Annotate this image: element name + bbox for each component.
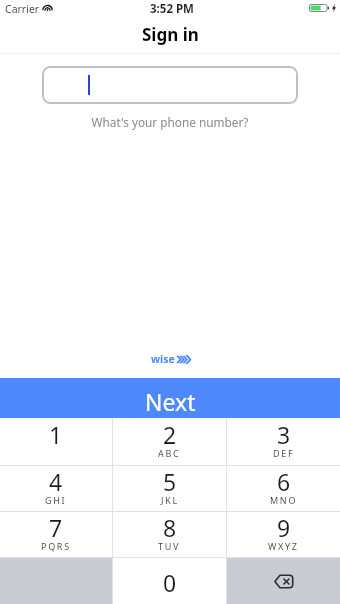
staticText: 2: [163, 419, 177, 450]
staticText: 3:52 PM: [150, 1, 194, 17]
button[interactable]: 1: [0, 418, 112, 465]
staticText: 3: [277, 419, 291, 450]
staticText: DEF: [273, 447, 295, 459]
button[interactable]: 7: [0, 512, 112, 557]
staticText: JKL: [161, 494, 179, 506]
staticText: ABC: [158, 447, 181, 459]
staticText: What's your phone number?: [0, 114, 340, 130]
button[interactable]: 0: [113, 558, 226, 604]
button[interactable]: 2: [113, 418, 226, 465]
staticText: 7: [49, 512, 63, 543]
button[interactable]: Next: [0, 378, 340, 418]
button[interactable]: 5: [113, 466, 226, 511]
button[interactable]: [42, 66, 298, 104]
button[interactable]: 9: [227, 512, 340, 557]
staticText: 4: [49, 466, 63, 497]
button[interactable]: 3: [227, 418, 340, 465]
staticText: 6: [277, 466, 291, 497]
staticText: Carrier: [5, 2, 40, 16]
staticText: WXYZ: [268, 540, 299, 552]
staticText: wise: [151, 352, 175, 366]
staticText: MNO: [270, 494, 298, 506]
staticText: Sign in: [142, 23, 199, 46]
staticText: 5: [163, 466, 177, 497]
staticText: 9: [277, 512, 291, 543]
staticText: 1: [49, 419, 63, 450]
button[interactable]: 8: [113, 512, 226, 557]
staticText: GHI: [45, 494, 67, 506]
button[interactable]: 6: [227, 466, 340, 511]
staticText: Next: [145, 386, 196, 417]
staticText: PQRS: [41, 540, 71, 552]
staticText: 0: [163, 567, 177, 598]
staticText: 8: [163, 512, 177, 543]
button[interactable]: 4: [0, 466, 112, 511]
button[interactable]: Delete: [227, 558, 340, 604]
staticText: TUV: [158, 540, 181, 552]
